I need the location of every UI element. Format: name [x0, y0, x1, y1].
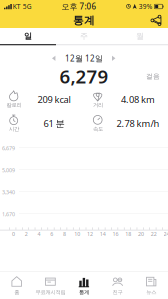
staticText: 주 [80, 31, 88, 41]
staticText: 4 [37, 230, 40, 237]
staticText: 0 [12, 230, 15, 237]
staticText: 걸음 [146, 72, 160, 80]
staticText: 12월 12일 [65, 53, 103, 64]
staticText: 39% [139, 2, 153, 11]
button[interactable]: 무료캐시적립 [34, 272, 67, 299]
button[interactable]: 뉴스 [134, 272, 168, 299]
staticText: 14 [100, 230, 106, 237]
button[interactable]: 공유 [144, 12, 168, 28]
staticText: 월 [136, 31, 144, 41]
staticText: 오후 7:06 [61, 1, 96, 12]
staticText: 칼로리 [6, 102, 21, 108]
staticText: 4.08 km [121, 93, 155, 105]
staticText: 6,279 [59, 64, 108, 89]
staticText: 209 kcal [37, 93, 70, 105]
staticText: 16 [112, 230, 118, 237]
staticText: 뉴스 [146, 289, 156, 296]
button[interactable]: 일 [0, 28, 56, 44]
staticText: 시간 [9, 126, 19, 132]
staticText: 3,340 [2, 189, 15, 196]
staticText: 8 [63, 230, 66, 237]
staticText: 6,679 [2, 145, 15, 152]
staticText: 18 [125, 230, 131, 237]
staticText: 통계 [73, 14, 95, 27]
button[interactable]: 통계 [67, 272, 101, 299]
staticText: 2 [25, 230, 28, 237]
staticText: 통계 [79, 289, 89, 296]
staticText: 20 [138, 230, 144, 237]
staticText: 12 [87, 230, 93, 237]
button[interactable]: 홈 [0, 272, 34, 299]
staticText: 61 분 [43, 117, 64, 129]
button[interactable]: 이전 날짜 [46, 53, 65, 64]
staticText: 친구 [113, 289, 123, 296]
staticText: 일 [24, 31, 32, 41]
staticText: 24 [163, 230, 168, 237]
staticText: 5G [23, 2, 32, 11]
button[interactable]: 월 [112, 28, 168, 44]
staticText: KT [13, 2, 21, 11]
staticText: 10 [74, 230, 80, 237]
staticText: 22 [151, 230, 157, 237]
staticText: 속도 [93, 126, 103, 132]
staticText: 5,009 [2, 167, 15, 174]
button[interactable]: 다음 날짜 [103, 53, 122, 64]
staticText: 홈 [14, 289, 19, 296]
staticText: 거리 [93, 102, 103, 108]
staticText: 6 [50, 230, 53, 237]
staticText: 무료캐시적립 [35, 289, 65, 296]
button[interactable]: 주 [56, 28, 112, 44]
staticText: 2.78 km/h [116, 117, 159, 129]
button[interactable]: 친구 [101, 272, 134, 299]
staticText: 1,670 [2, 211, 15, 218]
